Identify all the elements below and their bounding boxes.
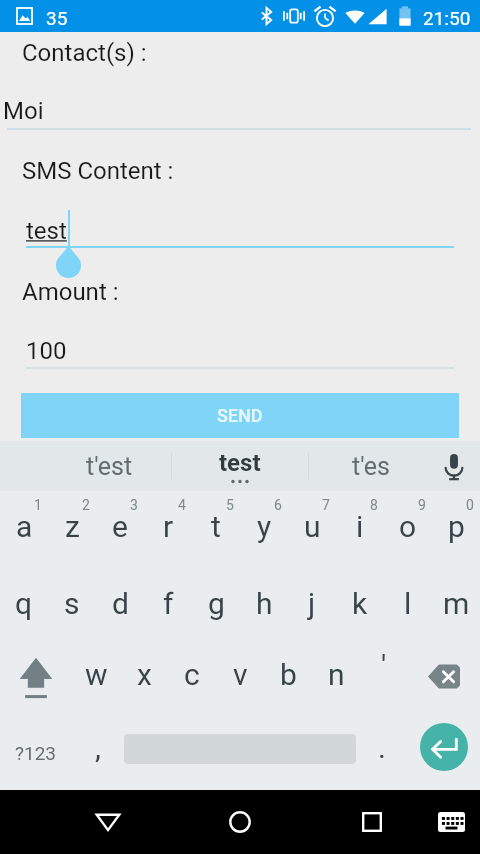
staticText: Contact(s) : — [22, 39, 147, 67]
button[interactable]: k — [336, 566, 384, 641]
staticText: 9 — [418, 497, 426, 513]
button[interactable]: n — [312, 641, 360, 716]
button[interactable]: c — [168, 641, 216, 716]
button[interactable]: p — [432, 491, 480, 566]
staticText: 3 — [130, 497, 138, 513]
staticText: x — [137, 657, 152, 692]
button[interactable]: t — [192, 491, 240, 566]
staticText: 8 — [370, 497, 378, 513]
staticText: . — [378, 730, 386, 765]
button[interactable]: Home — [210, 790, 270, 854]
button[interactable]: x — [120, 641, 168, 716]
staticText: ' — [381, 648, 387, 683]
button[interactable]: Back — [78, 790, 138, 854]
button[interactable]: Enter — [408, 716, 480, 790]
button[interactable]: , — [72, 716, 124, 790]
staticText: 7 — [322, 497, 330, 513]
button[interactable]: test — [171, 441, 308, 491]
button[interactable]: g — [192, 566, 240, 641]
staticText: 0 — [466, 497, 474, 513]
staticText: h — [256, 586, 273, 621]
staticText: z — [65, 509, 80, 544]
staticText: n — [328, 657, 345, 692]
button[interactable]: e — [96, 491, 144, 566]
button[interactable]: z — [48, 491, 96, 566]
staticText: 100 — [26, 337, 67, 365]
staticText: o — [399, 509, 417, 544]
button[interactable]: h — [240, 566, 288, 641]
staticText: SMS Content : — [22, 157, 174, 185]
staticText: y — [257, 509, 272, 544]
staticText: test — [26, 217, 67, 245]
staticText: 21:50 — [423, 7, 471, 29]
button[interactable]: y — [240, 491, 288, 566]
staticText: e — [112, 509, 128, 544]
staticText: a — [16, 509, 33, 544]
staticText: 5 — [226, 497, 234, 513]
staticText: , — [95, 730, 101, 765]
staticText: 1 — [34, 497, 42, 513]
button[interactable]: Keyboard — [426, 790, 476, 854]
staticText: t'es — [352, 452, 390, 481]
button[interactable]: i — [336, 491, 384, 566]
staticText: q — [15, 586, 33, 621]
staticText: w — [85, 657, 108, 692]
button[interactable]: Shift — [0, 641, 72, 716]
staticText: b — [280, 657, 297, 692]
staticText: i — [356, 509, 364, 544]
button[interactable]: v — [216, 641, 264, 716]
staticText: 35 — [46, 7, 68, 29]
button[interactable]: j — [288, 566, 336, 641]
button[interactable]: a — [0, 491, 48, 566]
staticText: Moi — [3, 97, 44, 125]
button[interactable]: Voice input — [428, 441, 480, 491]
button[interactable]: l — [384, 566, 432, 641]
button[interactable]: Backspace — [408, 641, 480, 716]
button[interactable]: u — [288, 491, 336, 566]
staticText: u — [304, 509, 321, 544]
staticText: g — [208, 586, 225, 621]
staticText: Amount : — [22, 278, 119, 306]
button[interactable]: f — [144, 566, 192, 641]
button[interactable]: Recents — [342, 790, 402, 854]
button[interactable]: d — [96, 566, 144, 641]
staticText: 6 — [274, 497, 282, 513]
button[interactable]: b — [264, 641, 312, 716]
staticText: t — [211, 509, 221, 544]
button[interactable]: ?123 — [0, 716, 72, 790]
button[interactable]: SEND — [21, 393, 459, 438]
button[interactable]: . — [356, 716, 408, 790]
staticText: test — [219, 449, 261, 477]
button[interactable]: q — [0, 566, 48, 641]
button[interactable]: w — [72, 641, 120, 716]
staticText: m — [443, 586, 470, 621]
staticText: d — [112, 586, 129, 621]
staticText: ?123 — [15, 742, 57, 764]
staticText: s — [64, 586, 80, 621]
staticText: c — [184, 657, 200, 692]
staticText: 4 — [178, 497, 186, 513]
button[interactable]: ' — [360, 641, 408, 716]
staticText: v — [233, 657, 248, 692]
button[interactable]: m — [432, 566, 480, 641]
button[interactable]: s — [48, 566, 96, 641]
button[interactable]: r — [144, 491, 192, 566]
button[interactable]: o — [384, 491, 432, 566]
staticText: r — [163, 509, 174, 544]
button[interactable]: t'es — [311, 441, 431, 491]
staticText: j — [308, 586, 316, 621]
staticText: f — [163, 586, 174, 621]
staticText: k — [352, 586, 368, 621]
staticText: p — [448, 509, 465, 544]
button[interactable]: t'est — [38, 441, 181, 491]
staticText: SEND — [217, 405, 263, 426]
staticText: 2 — [82, 497, 90, 513]
staticText: t'est — [86, 452, 133, 481]
staticText: l — [404, 586, 412, 621]
